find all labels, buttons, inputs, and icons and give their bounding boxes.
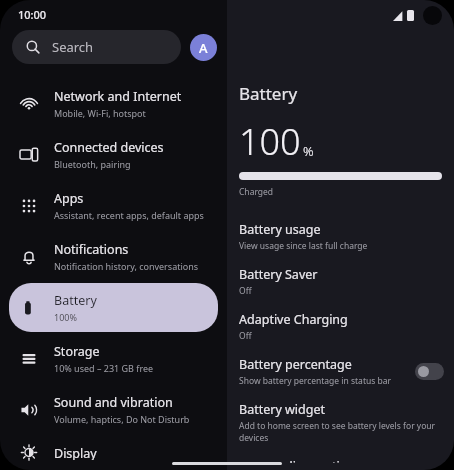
staticText: Connected devices [54,139,164,156]
button[interactable]: Battery usage [227,214,454,259]
staticText: Notifications [54,241,129,258]
staticText: Notification history, conversations [54,260,199,272]
staticText: Off [239,330,252,342]
staticText: Search [52,38,94,56]
staticText: Battery usage [239,221,321,238]
button[interactable]: Network and Internet [9,79,218,128]
button[interactable]: Notifications [9,232,218,281]
staticText: Off [239,285,252,297]
button[interactable]: Connected devices [9,130,218,179]
staticText: Battery percentage [239,356,352,373]
button[interactable]: Battery Saver [227,259,454,304]
staticText: Storage [54,343,100,360]
staticText: 10% used – 231 GB free [54,362,154,374]
staticText: Add to home screen to see battery levels… [239,420,436,444]
button[interactable]: Storage [9,334,218,383]
staticText: A [199,39,208,57]
staticText: Show battery percentage in status bar [239,375,391,387]
button[interactable]: Battery diagnostics [227,451,454,470]
staticText: Adaptive Charging [239,311,348,328]
staticText: Battery [239,82,298,105]
staticText: Charged [239,186,274,198]
staticText: % [303,142,314,160]
staticText: Assistant, recent apps, default apps [54,209,204,221]
staticText: 100% [54,311,77,323]
button[interactable]: Display [9,436,218,469]
staticText: Battery [54,292,97,309]
staticText: 10:00 [18,7,47,22]
staticText: Battery Saver [239,266,318,283]
button[interactable]: Battery widget [227,394,454,451]
staticText: Bluetooth, pairing [54,158,131,170]
staticText: Display [54,445,97,460]
button[interactable]: Account [190,34,217,61]
button[interactable]: Search [12,30,181,64]
button[interactable]: Battery [9,283,218,332]
staticText: Battery widget [239,401,325,418]
button[interactable]: Battery percentage [227,349,454,394]
staticText: 100 [239,117,301,166]
button[interactable]: Sound and vibration [9,385,218,434]
button[interactable]: Apps [9,181,218,230]
staticText: Network and Internet [54,88,182,105]
staticText: Sound and vibration [54,394,173,411]
staticText: Apps [54,190,84,207]
staticText: Mobile, Wi-Fi, hotspot [54,107,146,119]
staticText: Volume, haptics, Do Not Disturb [54,413,190,425]
staticText: Battery diagnostics [239,458,352,463]
button[interactable]: Adaptive Charging [227,304,454,349]
staticText: View usage since last full charge [239,240,368,252]
